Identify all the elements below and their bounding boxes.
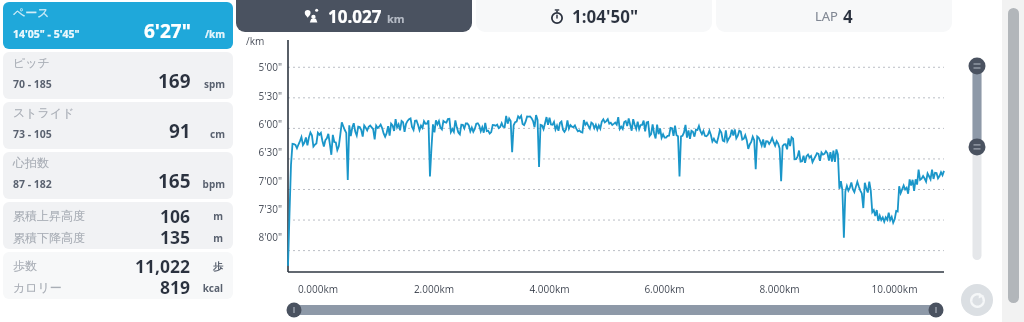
staticText: 819 bbox=[160, 275, 191, 297]
button[interactable]: ピッチ bbox=[3, 52, 233, 99]
button[interactable]: ストライド bbox=[3, 102, 233, 149]
staticText: cm bbox=[195, 127, 225, 141]
staticText: km bbox=[387, 11, 405, 26]
staticText: 歩数 bbox=[13, 258, 37, 273]
staticText: 6'00" bbox=[240, 117, 282, 131]
staticText: m bbox=[195, 231, 223, 245]
staticText: 70 - 185 bbox=[13, 77, 52, 91]
staticText: 4.000km bbox=[492, 282, 607, 296]
staticText: 4 bbox=[843, 5, 853, 28]
staticText: 165 bbox=[158, 168, 191, 194]
staticText: 7'30" bbox=[240, 202, 282, 216]
staticText: 8'00" bbox=[240, 230, 282, 244]
staticText: カロリー bbox=[13, 280, 62, 295]
staticText: bpm bbox=[195, 177, 225, 191]
staticText: 歩 bbox=[195, 260, 223, 273]
button[interactable]: Vertical zoom range bbox=[966, 58, 988, 260]
staticText: 5'00" bbox=[240, 60, 282, 74]
staticText: 5'30" bbox=[240, 89, 282, 103]
staticText: 10.027 bbox=[328, 5, 382, 28]
button[interactable]: 累積上昇高度 bbox=[3, 202, 233, 249]
staticText: 8.000km bbox=[722, 282, 837, 296]
staticText: 0.000km bbox=[260, 282, 376, 296]
staticText: 心拍数 bbox=[13, 155, 49, 170]
staticText: ペース bbox=[13, 5, 50, 20]
button[interactable]: LAP bbox=[716, 0, 952, 32]
staticText: 10.000km bbox=[837, 282, 952, 296]
staticText: 1:04'50" bbox=[572, 5, 639, 28]
staticText: 2.000km bbox=[376, 282, 492, 296]
staticText: ストライド bbox=[13, 105, 75, 120]
staticText: 11,022 bbox=[135, 254, 191, 275]
staticText: /km bbox=[246, 34, 265, 48]
button[interactable]: ペース bbox=[3, 2, 233, 49]
staticText: LAP bbox=[815, 7, 838, 25]
staticText: spm bbox=[195, 77, 225, 91]
staticText: 87 - 182 bbox=[13, 177, 52, 191]
button[interactable]: 歩数 bbox=[3, 252, 233, 299]
staticText: 14'05" - 5'45" bbox=[13, 27, 80, 41]
staticText: 7'00" bbox=[240, 174, 282, 188]
staticText: 73 - 105 bbox=[13, 127, 52, 141]
button[interactable]: 1:04'50" bbox=[476, 0, 712, 32]
staticText: 169 bbox=[158, 68, 191, 94]
staticText: 106 bbox=[160, 204, 191, 225]
button[interactable]: Reset zoom bbox=[961, 284, 993, 316]
staticText: 累積上昇高度 bbox=[13, 208, 85, 223]
staticText: 累積下降高度 bbox=[13, 230, 85, 245]
staticText: 135 bbox=[160, 225, 191, 247]
staticText: 6'30" bbox=[240, 145, 282, 159]
staticText: m bbox=[195, 209, 223, 223]
staticText: 6.000km bbox=[607, 282, 722, 296]
staticText: ピッチ bbox=[13, 55, 50, 70]
button[interactable]: Page scrollbar bbox=[1008, 8, 1019, 303]
staticText: kcal bbox=[195, 281, 223, 295]
staticText: /km bbox=[195, 27, 225, 41]
button[interactable]: 心拍数 bbox=[3, 152, 233, 199]
button[interactable]: Distance range bbox=[288, 302, 942, 318]
staticText: 6'27" bbox=[144, 18, 191, 44]
button[interactable]: 10.027 bbox=[236, 0, 472, 32]
staticText: 91 bbox=[169, 118, 191, 144]
